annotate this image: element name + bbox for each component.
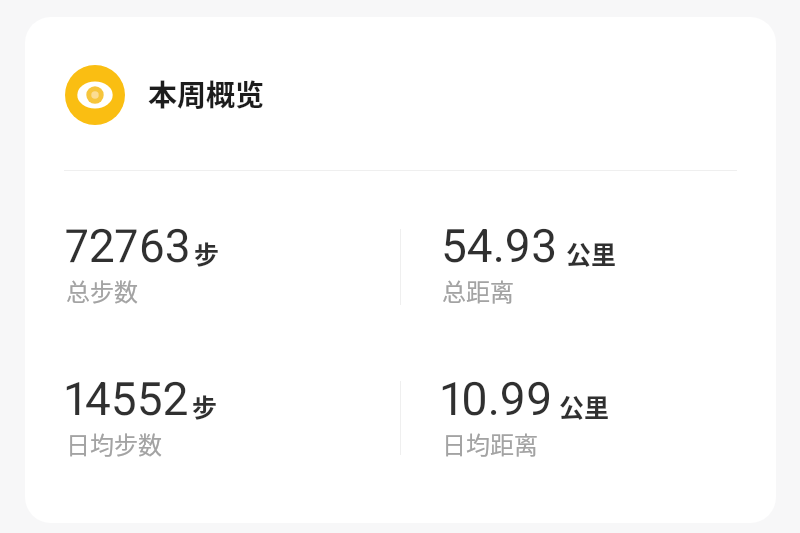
staticText: 总步数 [66, 273, 138, 308]
button[interactable]: Weekly overview [48, 50, 266, 140]
staticText: 总距离 [442, 273, 514, 308]
staticText: 日均距离 [442, 426, 538, 461]
button[interactable]: 54.93 [441, 219, 771, 308]
button[interactable]: 72763 [65, 219, 395, 308]
staticText: 本周概览 [148, 72, 265, 114]
staticText: 14552 [65, 372, 189, 426]
staticText: 步 [192, 388, 218, 424]
staticText: 10.99 [441, 372, 553, 426]
staticText: 日均步数 [66, 426, 162, 461]
other: Weekly overview [65, 65, 125, 125]
staticText: 公里 [559, 388, 610, 424]
staticText: 54.93 [441, 219, 557, 273]
staticText: 公里 [566, 235, 617, 271]
button[interactable]: 10.99 [441, 372, 771, 461]
staticText: 步 [194, 235, 220, 271]
staticText: 72763 [65, 219, 191, 273]
button[interactable]: 14552 [65, 372, 395, 461]
